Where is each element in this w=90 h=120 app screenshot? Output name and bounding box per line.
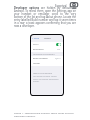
staticText: QP1A: [55, 57, 61, 60]
button[interactable]: < Wi-Fi: [32, 37, 40, 40]
staticText: Developer options are hidden by default …: [14, 6, 76, 27]
button[interactable]: Build number: [31, 56, 63, 61]
other: Screenshot thumbnail: [70, 2, 78, 9]
staticText: Exported: [55, 4, 67, 8]
staticText: ABOUT THIS DEVICE: [33, 72, 52, 75]
button[interactable]: Wi-Fi: [31, 42, 63, 47]
staticText: NETWORK & INTERNET: [33, 53, 55, 56]
staticText: Build number: [33, 57, 48, 60]
staticText: Wi-Fi: [33, 43, 39, 46]
button[interactable]: Bluetooth: [31, 47, 63, 52]
staticText: On: [57, 48, 61, 51]
staticText: Model: [33, 62, 40, 65]
button[interactable]: Model: [31, 61, 63, 66]
staticText: Bluetooth: [33, 48, 44, 51]
button[interactable]: Wi-Fi toggle: [56, 43, 61, 46]
staticText: Tap Build number seven times to enable d…: [33, 75, 61, 83]
staticText: Figure 1. Tapping Build number seven tim…: [14, 111, 76, 117]
button[interactable]: Exported: [55, 2, 78, 9]
staticText: About: [44, 37, 51, 40]
